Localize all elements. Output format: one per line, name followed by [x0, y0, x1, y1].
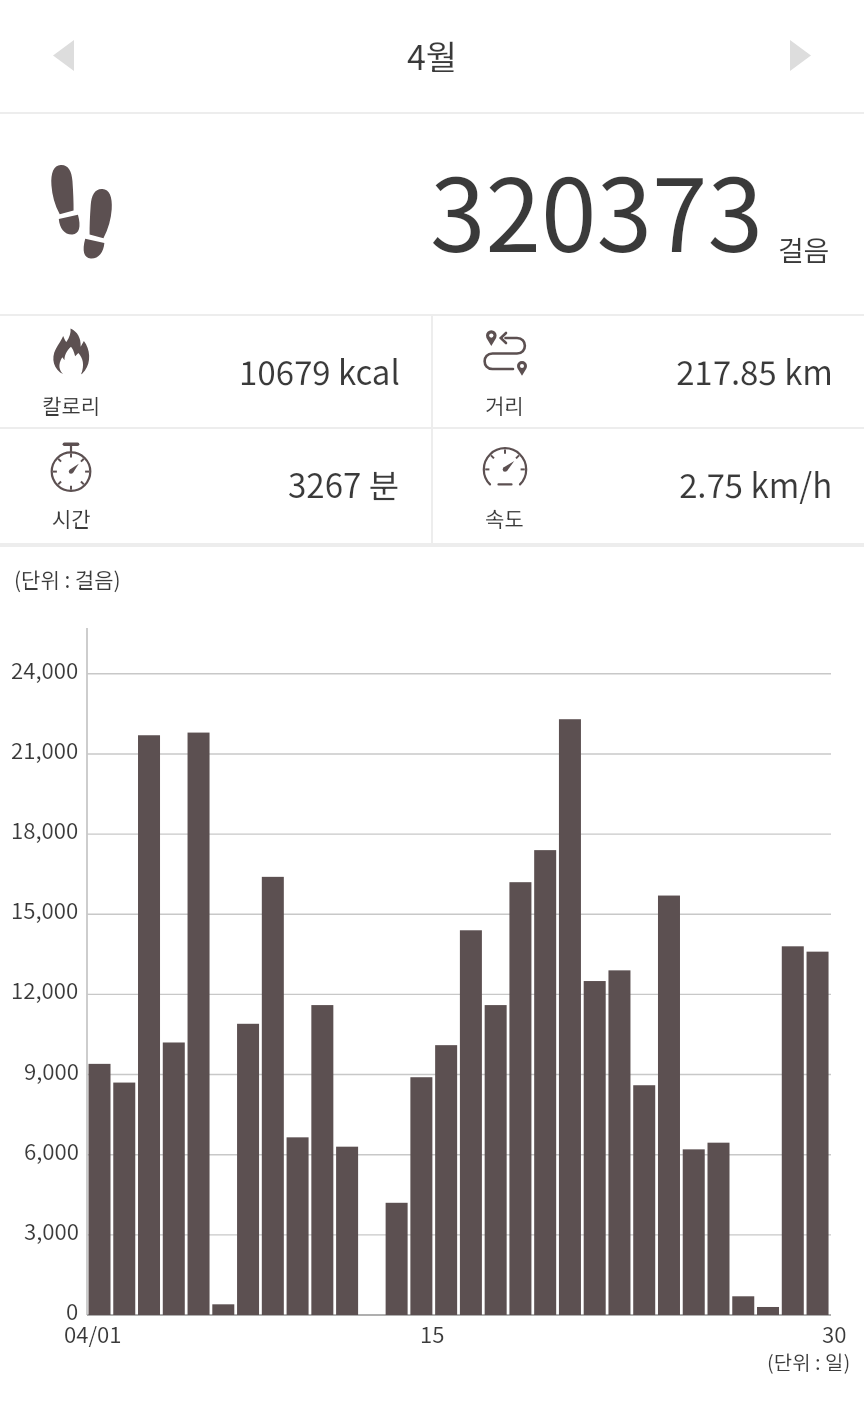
staticText: 15	[420, 1317, 445, 1349]
staticText: 3267 분	[288, 460, 400, 508]
staticText: 2.75 km/h	[679, 460, 833, 508]
staticText: 칼로리	[42, 390, 100, 420]
staticText: 04/01	[64, 1317, 122, 1349]
staticText: 24,000	[11, 653, 79, 685]
staticText: 21,000	[11, 733, 79, 765]
staticText: (단위 : 일)	[767, 1347, 851, 1376]
staticText: (단위 : 걸음)	[14, 564, 121, 594]
staticText: 10679 kcal	[239, 347, 400, 395]
button[interactable]: 칼로리	[0, 316, 431, 368]
button[interactable]: Previous month	[25, 17, 101, 93]
button[interactable]: 거리	[433, 316, 864, 368]
staticText: 속도	[485, 503, 524, 533]
staticText: 18,000	[11, 813, 79, 845]
staticText: 6,000	[24, 1134, 79, 1166]
staticText: 30	[822, 1317, 847, 1349]
staticText: 9,000	[24, 1054, 79, 1086]
staticText: 거리	[485, 390, 524, 420]
staticText: 217.85 km	[676, 347, 833, 395]
staticText: 320373	[430, 136, 763, 281]
button[interactable]: 속도	[433, 429, 864, 481]
button[interactable]: 시간	[0, 429, 431, 481]
staticText: 15,000	[11, 893, 79, 925]
staticText: 3,000	[24, 1214, 79, 1246]
staticText: 0	[66, 1294, 79, 1326]
staticText: 시간	[52, 503, 91, 533]
staticText: 4월	[407, 31, 458, 80]
staticText: 걸음	[778, 229, 830, 270]
staticText: 12,000	[11, 973, 79, 1005]
button[interactable]: Next month	[762, 17, 838, 93]
